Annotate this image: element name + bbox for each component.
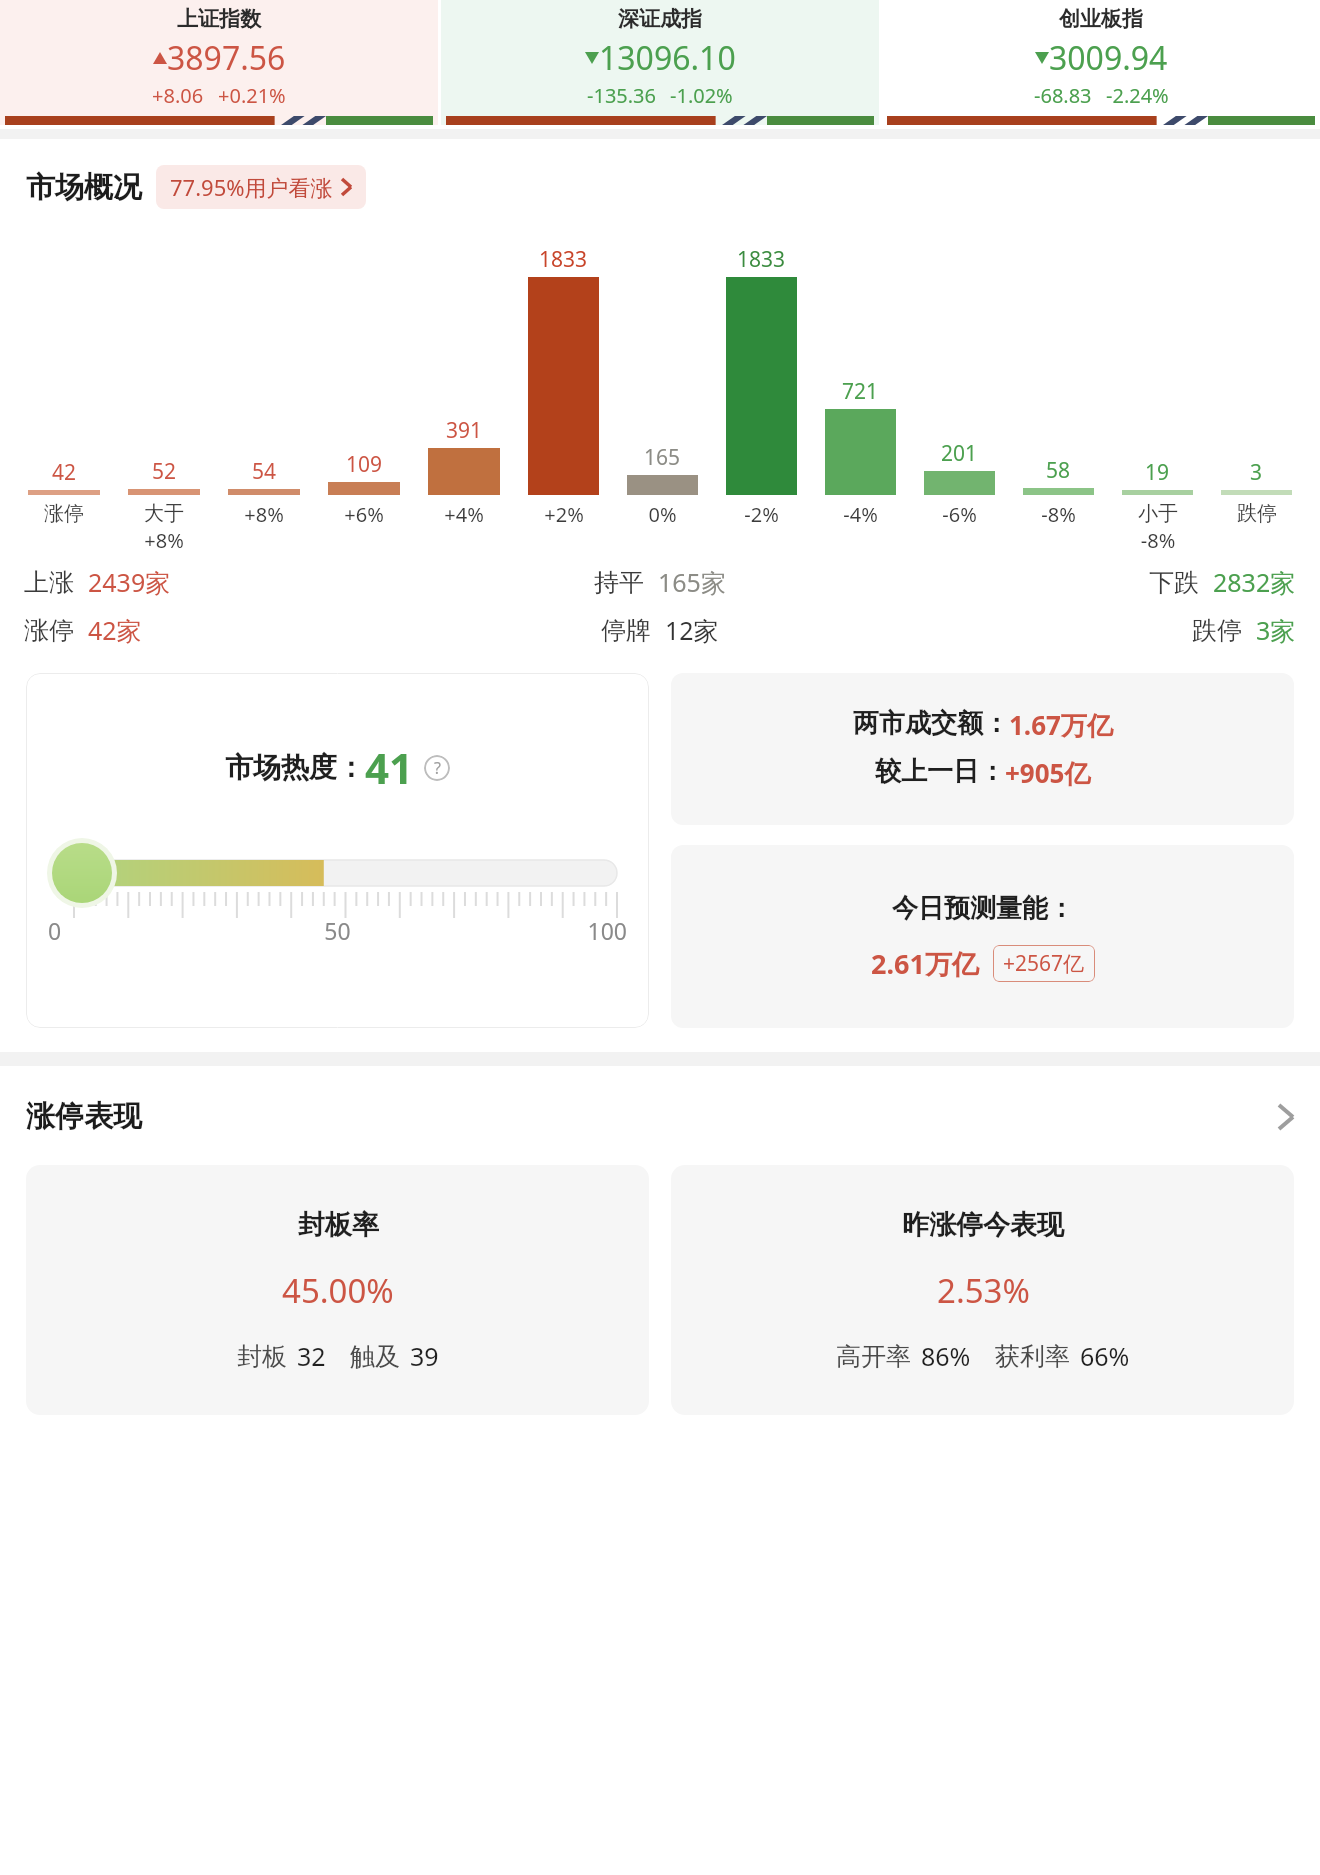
staticText: ? <box>434 757 441 779</box>
button[interactable]: 创业板指 <box>882 0 1320 125</box>
staticText: 3009.94 <box>1049 36 1168 80</box>
staticText: 2832家 <box>1213 565 1296 599</box>
staticText: 3 <box>1250 458 1263 487</box>
staticText: 较上一日： <box>875 755 1005 788</box>
staticText: 45.00% <box>282 1268 394 1313</box>
staticText: 41 <box>365 739 414 796</box>
staticText: 大于 +8% <box>144 501 184 554</box>
staticText: 停牌 <box>601 615 651 646</box>
staticText: 165家 <box>658 565 726 599</box>
staticText: 今日预测量能： <box>892 892 1074 925</box>
staticText: 13096.10 <box>599 36 736 80</box>
staticText: 58 <box>1046 456 1071 485</box>
staticText: 昨涨停今表现 <box>902 1208 1064 1242</box>
staticText: -8% <box>1041 501 1076 528</box>
staticText: 2.53% <box>937 1268 1030 1313</box>
staticText: 3897.56 <box>167 36 286 80</box>
staticText: 32 <box>297 1339 326 1373</box>
staticText: 391 <box>446 416 483 445</box>
staticText: 上涨 <box>24 567 74 598</box>
staticText: 42 <box>52 458 77 487</box>
staticText: 54 <box>252 457 277 486</box>
staticText: 0 <box>48 915 241 946</box>
staticText: 下跌 <box>1149 567 1199 598</box>
staticText: -6% <box>942 501 977 528</box>
staticText: 1833 <box>539 245 588 274</box>
button[interactable]: 封板率 <box>26 1165 649 1415</box>
staticText: 50 <box>241 915 434 946</box>
button[interactable]: 市场热度： <box>26 673 649 1028</box>
staticText: 66% <box>1080 1339 1130 1373</box>
staticText: +4% <box>444 501 484 528</box>
staticText: 小于 -8% <box>1138 501 1178 554</box>
staticText: 市场热度： <box>225 750 365 785</box>
staticText: 2.61万亿 <box>871 945 979 982</box>
staticText: -2% <box>744 501 779 528</box>
staticText: 1833 <box>737 245 786 274</box>
staticText: -4% <box>843 501 878 528</box>
staticText: 持平 <box>594 567 644 598</box>
staticText: +8% <box>244 501 284 528</box>
staticText: 创业板指 <box>1059 6 1143 32</box>
staticText: 跌停 <box>1237 501 1277 526</box>
staticText: +2% <box>544 501 584 528</box>
staticText: 165 <box>644 443 681 472</box>
staticText: 市场概况 <box>26 169 142 206</box>
staticText: 42家 <box>88 613 142 647</box>
staticText: 高开率 <box>836 1341 911 1372</box>
staticText: 深证成指 <box>618 6 702 32</box>
staticText: 721 <box>842 377 879 406</box>
staticText: -1.02% <box>670 82 733 109</box>
staticText: 涨停 <box>44 501 84 526</box>
staticText: +8.06 <box>152 82 204 109</box>
staticText: 109 <box>346 450 383 479</box>
staticText: 0% <box>648 501 677 528</box>
staticText: 86% <box>921 1339 971 1373</box>
staticText: +6% <box>344 501 384 528</box>
button[interactable]: 昨涨停今表现 <box>671 1165 1294 1415</box>
staticText: -2.24% <box>1106 82 1169 109</box>
staticText: 201 <box>941 439 978 468</box>
staticText: 封板 <box>237 1341 287 1372</box>
staticText: +2567亿 <box>1003 949 1085 978</box>
staticText: 77.95%用户看涨 <box>170 172 333 202</box>
button[interactable]: 帮助 <box>424 755 450 781</box>
staticText: -68.83 <box>1034 82 1092 109</box>
button[interactable]: 涨停表现 <box>0 1092 1320 1141</box>
button[interactable]: 上证指数 <box>0 0 438 125</box>
staticText: 封板率 <box>298 1208 379 1242</box>
staticText: 获利率 <box>995 1341 1070 1372</box>
staticText: 上证指数 <box>177 6 261 32</box>
staticText: 跌停 <box>1192 615 1242 646</box>
staticText: 3家 <box>1256 613 1296 647</box>
staticText: 100 <box>434 915 627 946</box>
staticText: 涨停 <box>24 615 74 646</box>
staticText: 两市成交额： <box>853 707 1009 740</box>
staticText: 39 <box>410 1339 439 1373</box>
staticText: 1.67万亿 <box>1009 707 1113 743</box>
staticText: 12家 <box>665 613 719 647</box>
button[interactable]: 两市成交额： <box>671 673 1294 825</box>
button[interactable]: 今日预测量能： <box>671 845 1294 1028</box>
button[interactable]: 深证成指 <box>441 0 879 125</box>
staticText: 52 <box>152 457 177 486</box>
staticText: 19 <box>1145 458 1170 487</box>
staticText: +0.21% <box>218 82 286 109</box>
staticText: 触及 <box>350 1341 400 1372</box>
staticText: -135.36 <box>587 82 656 109</box>
button[interactable]: 77.95%用户看涨 <box>156 165 366 209</box>
staticText: 2439家 <box>88 565 171 599</box>
staticText: +905亿 <box>1005 755 1091 791</box>
staticText: 涨停表现 <box>26 1098 142 1135</box>
